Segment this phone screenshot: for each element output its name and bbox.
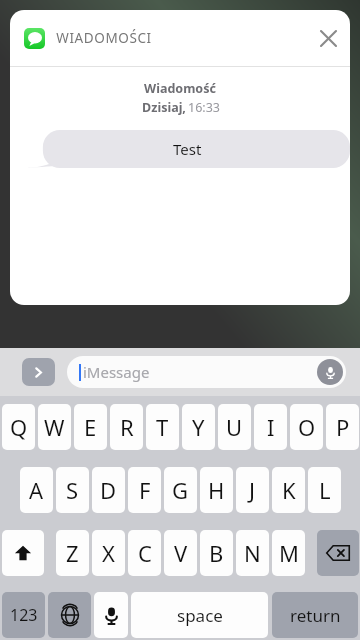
button[interactable]: V xyxy=(164,530,197,576)
staticText: Test xyxy=(173,139,202,159)
button[interactable]: S xyxy=(56,467,89,513)
button[interactable]: M xyxy=(272,530,305,576)
button[interactable]: L xyxy=(308,467,341,513)
button[interactable]: P xyxy=(326,404,359,450)
staticText: WIADOMOŚCI xyxy=(56,29,152,47)
staticText: space xyxy=(177,604,223,627)
staticText: I xyxy=(267,412,275,442)
staticText: W xyxy=(44,412,65,442)
button[interactable]: F xyxy=(128,467,161,513)
staticText: P xyxy=(336,412,350,442)
button[interactable]: J xyxy=(236,467,269,513)
staticText: R xyxy=(120,412,134,442)
staticText: D xyxy=(100,475,117,505)
button[interactable]: Next keyboard xyxy=(48,592,91,638)
button[interactable]: R xyxy=(110,404,143,450)
button[interactable]: N xyxy=(236,530,269,576)
staticText: 123 xyxy=(10,604,38,626)
button[interactable]: E xyxy=(74,404,107,450)
staticText: Q xyxy=(10,412,28,442)
staticText: Y xyxy=(192,412,205,442)
staticText: Dzisiaj, xyxy=(140,99,188,116)
staticText: F xyxy=(139,475,151,505)
button[interactable]: space xyxy=(131,592,268,638)
button[interactable]: D xyxy=(92,467,125,513)
staticText: X xyxy=(102,538,115,568)
button[interactable]: Shift xyxy=(2,530,44,576)
staticText: M xyxy=(279,538,299,568)
button[interactable]: Y xyxy=(182,404,215,450)
staticText: B xyxy=(209,538,224,568)
button[interactable]: WIADOMOŚCI xyxy=(10,10,350,66)
button[interactable]: G xyxy=(164,467,197,513)
button[interactable]: K xyxy=(272,467,305,513)
button[interactable]: Close xyxy=(306,16,350,60)
button[interactable]: return xyxy=(272,592,358,638)
button[interactable]: B xyxy=(200,530,233,576)
button[interactable]: Dictate xyxy=(317,359,343,385)
staticText: J xyxy=(249,475,256,505)
staticText: Z xyxy=(66,538,79,568)
button[interactable]: H xyxy=(200,467,233,513)
staticText: L xyxy=(319,475,331,505)
staticText: return xyxy=(290,604,341,627)
button[interactable]: Q xyxy=(2,404,35,450)
button[interactable]: X xyxy=(92,530,125,576)
staticText: O xyxy=(298,412,316,442)
staticText: C xyxy=(138,538,152,568)
staticText: S xyxy=(66,475,79,505)
button[interactable]: Dictation xyxy=(94,592,128,638)
staticText: G xyxy=(172,475,189,505)
button[interactable]: C xyxy=(128,530,161,576)
button[interactable]: T xyxy=(146,404,179,450)
staticText: 16:33 xyxy=(188,99,220,116)
button[interactable]: Backspace xyxy=(317,530,359,576)
staticText: Wiadomość xyxy=(144,80,216,97)
button[interactable]: A xyxy=(20,467,53,513)
staticText: H xyxy=(208,475,225,505)
button[interactable]: Show apps xyxy=(22,358,55,386)
staticText: K xyxy=(282,475,296,505)
staticText: A xyxy=(29,475,44,505)
button[interactable]: O xyxy=(290,404,323,450)
staticText: U xyxy=(226,412,243,442)
staticText: E xyxy=(84,412,97,442)
button[interactable]: W xyxy=(38,404,71,450)
button[interactable]: I xyxy=(254,404,287,450)
staticText: iMessage xyxy=(83,362,150,382)
button[interactable]: 123 xyxy=(2,592,45,638)
button[interactable]: iMessage xyxy=(67,356,346,388)
staticText: V xyxy=(174,538,188,568)
button[interactable]: Test xyxy=(25,130,350,168)
staticText: T xyxy=(156,412,169,442)
button[interactable]: U xyxy=(218,404,251,450)
button[interactable]: Z xyxy=(56,530,89,576)
staticText: N xyxy=(244,538,261,568)
